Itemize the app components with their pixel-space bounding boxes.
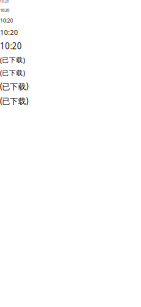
staticText: 10:20 xyxy=(0,17,13,24)
staticText: 10:20 xyxy=(0,0,9,3)
staticText: 10:20 xyxy=(0,41,22,51)
staticText: (已下载) xyxy=(0,55,25,64)
staticText: (已下载) xyxy=(0,68,25,77)
staticText: 10:20 xyxy=(0,7,9,13)
staticText: 10:20 xyxy=(0,28,18,37)
staticText: (已下载) xyxy=(0,81,28,92)
staticText: (已下载) xyxy=(0,96,28,106)
